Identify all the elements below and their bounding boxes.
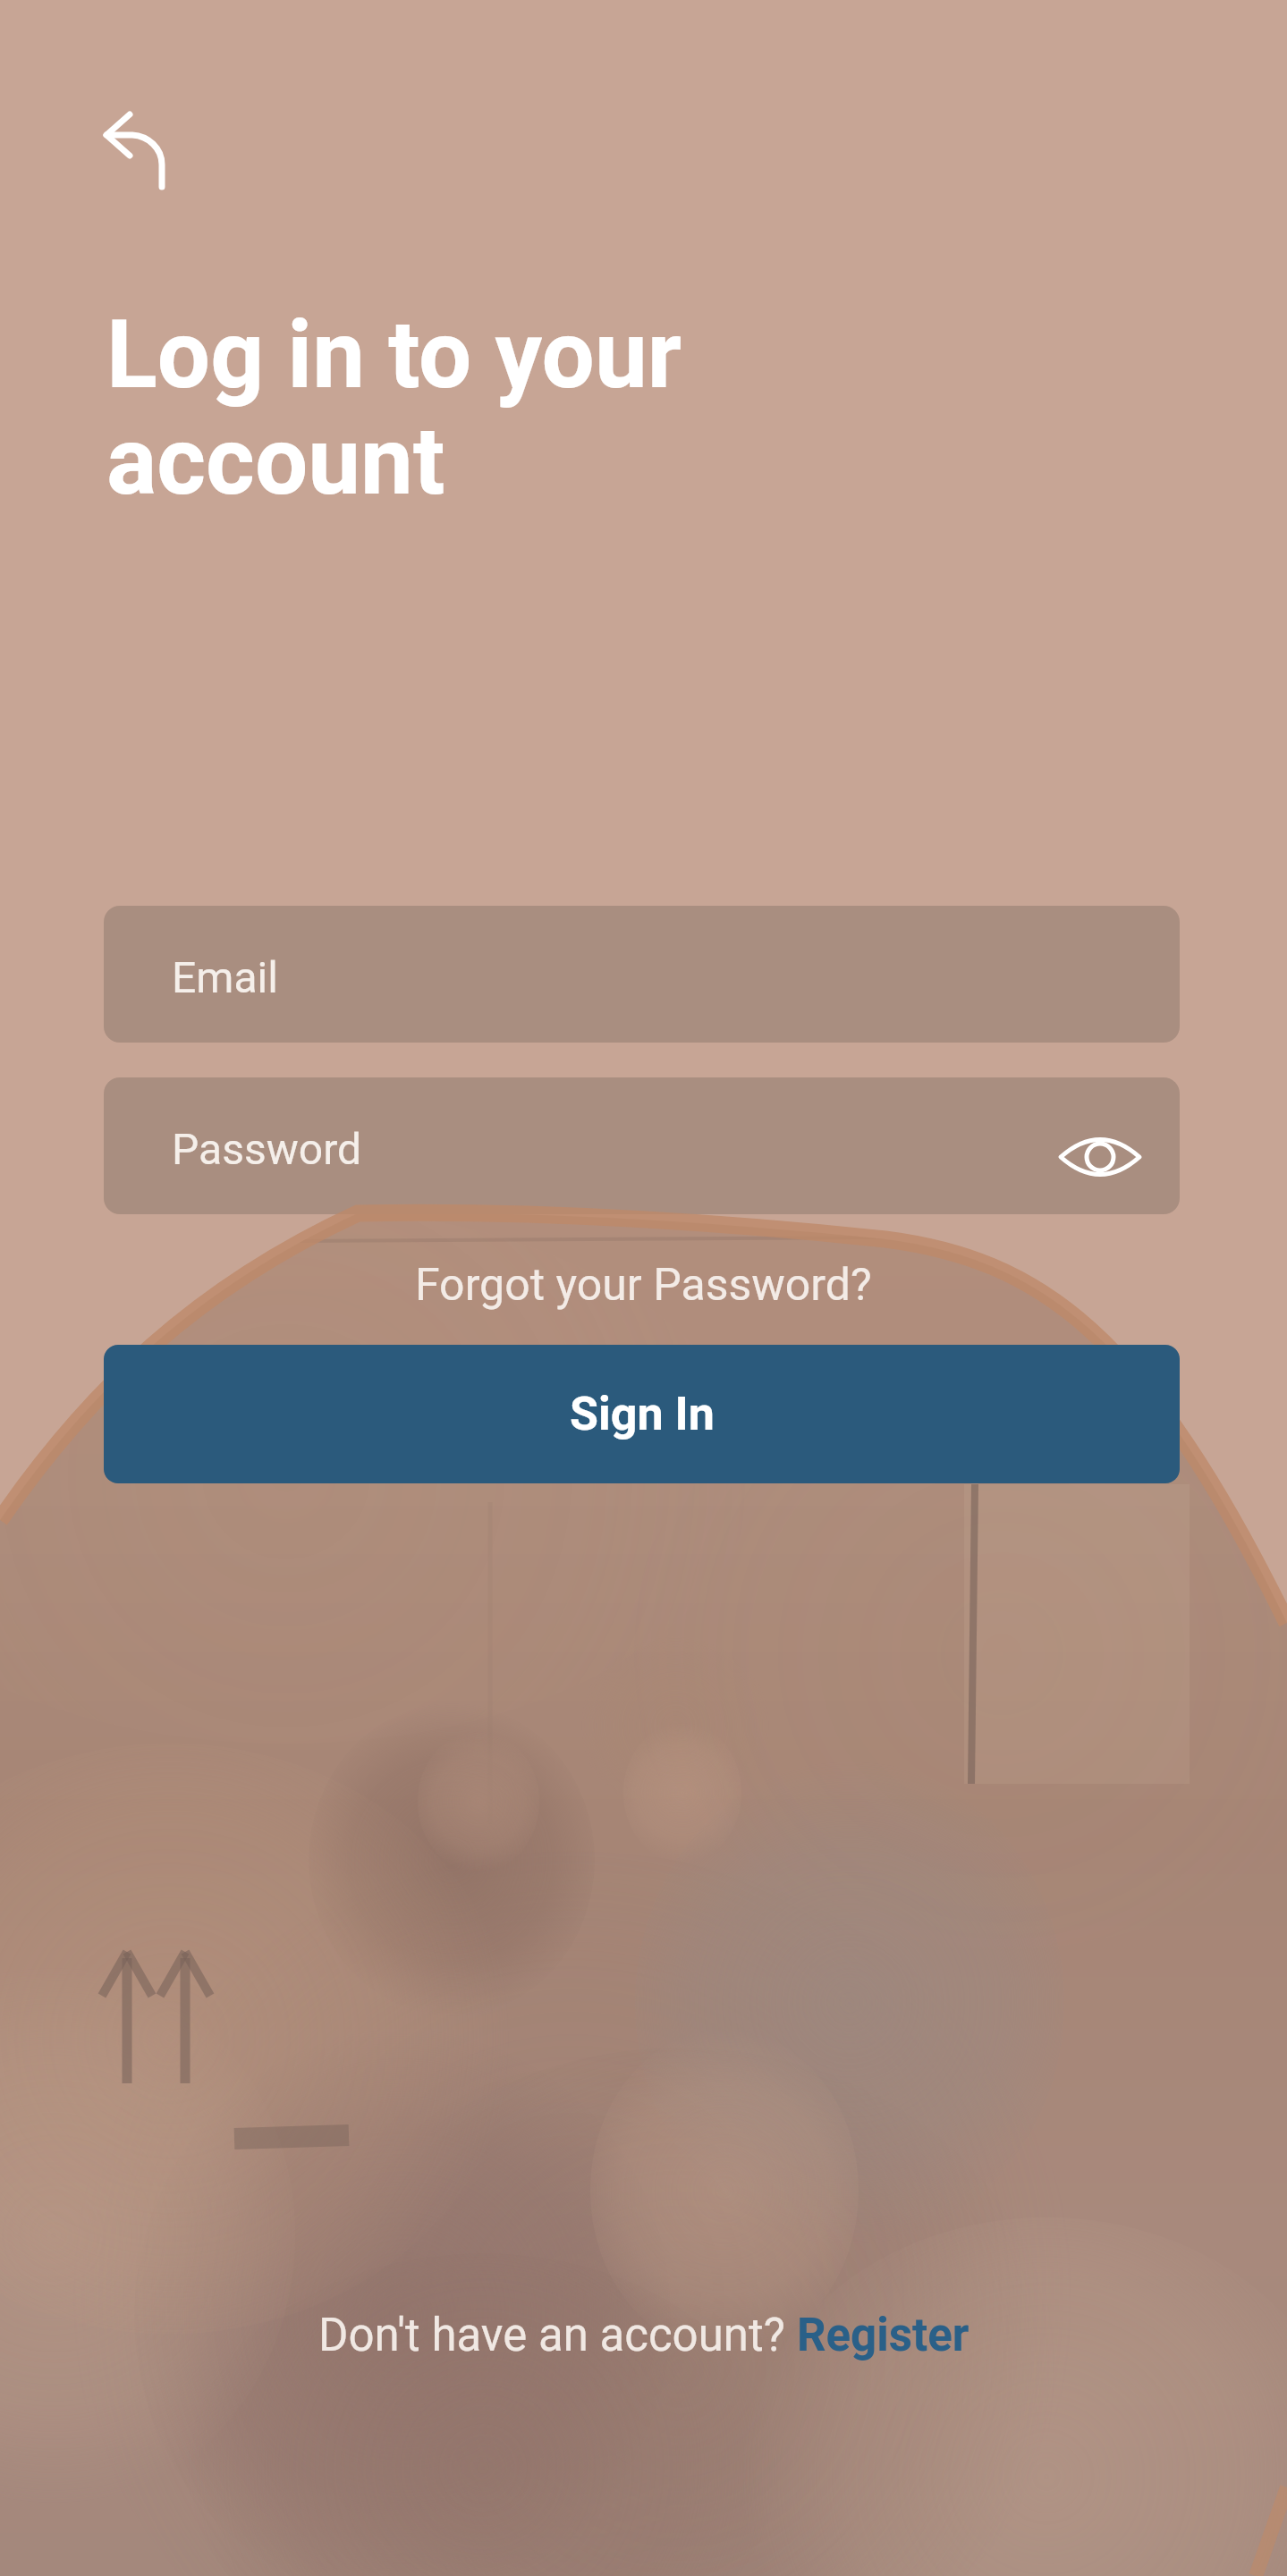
button[interactable] <box>85 94 183 201</box>
button[interactable]: Register <box>797 2309 969 2362</box>
staticText: Register <box>797 2309 969 2362</box>
button[interactable]: Password <box>104 1077 1180 1214</box>
button[interactable]: Forgot your Password? <box>415 1259 872 1312</box>
button[interactable]: Sign In <box>104 1345 1180 1483</box>
button[interactable]: Email <box>104 906 1180 1043</box>
staticText: Forgot your Password? <box>415 1259 872 1312</box>
staticText: Password <box>172 1124 362 1174</box>
staticText: Don't have an account? <box>318 2309 797 2362</box>
staticText: Email <box>172 952 278 1002</box>
staticText: Log in to your account <box>106 300 1224 517</box>
staticText: Sign In <box>570 1387 715 1441</box>
